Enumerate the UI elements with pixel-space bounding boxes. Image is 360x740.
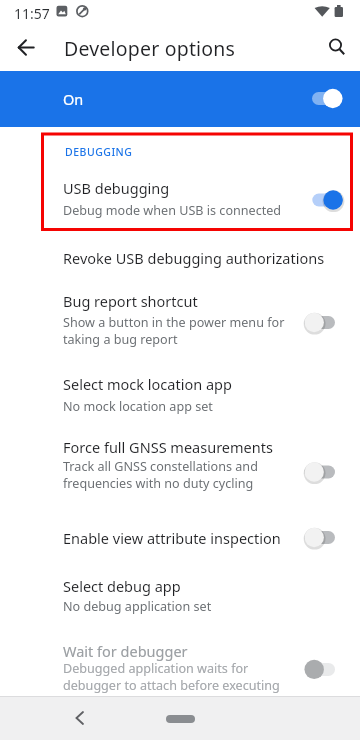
button[interactable] bbox=[0, 168, 360, 232]
button[interactable] bbox=[0, 564, 360, 624]
button[interactable] bbox=[316, 28, 356, 68]
staticText: Select debug app bbox=[63, 576, 181, 596]
staticText: Enable view attribute inspection bbox=[63, 528, 281, 548]
staticText: Debugged application waits for debugger … bbox=[63, 660, 298, 694]
staticText: Revoke USB debugging authorizations bbox=[63, 248, 325, 268]
staticText: Show a button in the power menu for taki… bbox=[63, 314, 315, 348]
button[interactable] bbox=[166, 715, 195, 723]
staticText: No mock location app set bbox=[63, 398, 213, 415]
staticText: USB debugging bbox=[63, 178, 170, 198]
button[interactable] bbox=[0, 364, 360, 424]
button[interactable] bbox=[0, 428, 360, 512]
staticText: On bbox=[63, 89, 84, 109]
staticText: Wait for debugger bbox=[63, 641, 188, 661]
button[interactable] bbox=[0, 628, 360, 712]
button[interactable] bbox=[6, 27, 46, 67]
staticText: Select mock location app bbox=[63, 374, 232, 394]
button[interactable] bbox=[0, 284, 360, 360]
staticText: Force full GNSS measurements bbox=[63, 437, 273, 457]
staticText: DEBUGGING bbox=[65, 145, 133, 159]
staticText: Bug report shortcut bbox=[63, 291, 198, 311]
staticText: Developer options bbox=[64, 35, 236, 62]
staticText: No debug application set bbox=[63, 598, 212, 615]
button[interactable]: On bbox=[0, 71, 360, 127]
button[interactable] bbox=[59, 698, 99, 738]
staticText: 11:57 bbox=[14, 4, 50, 23]
staticText: Debug mode when USB is connected bbox=[63, 202, 282, 219]
staticText: Track all GNSS constellations and freque… bbox=[63, 458, 315, 492]
button[interactable] bbox=[0, 234, 360, 281]
button[interactable] bbox=[0, 514, 360, 562]
